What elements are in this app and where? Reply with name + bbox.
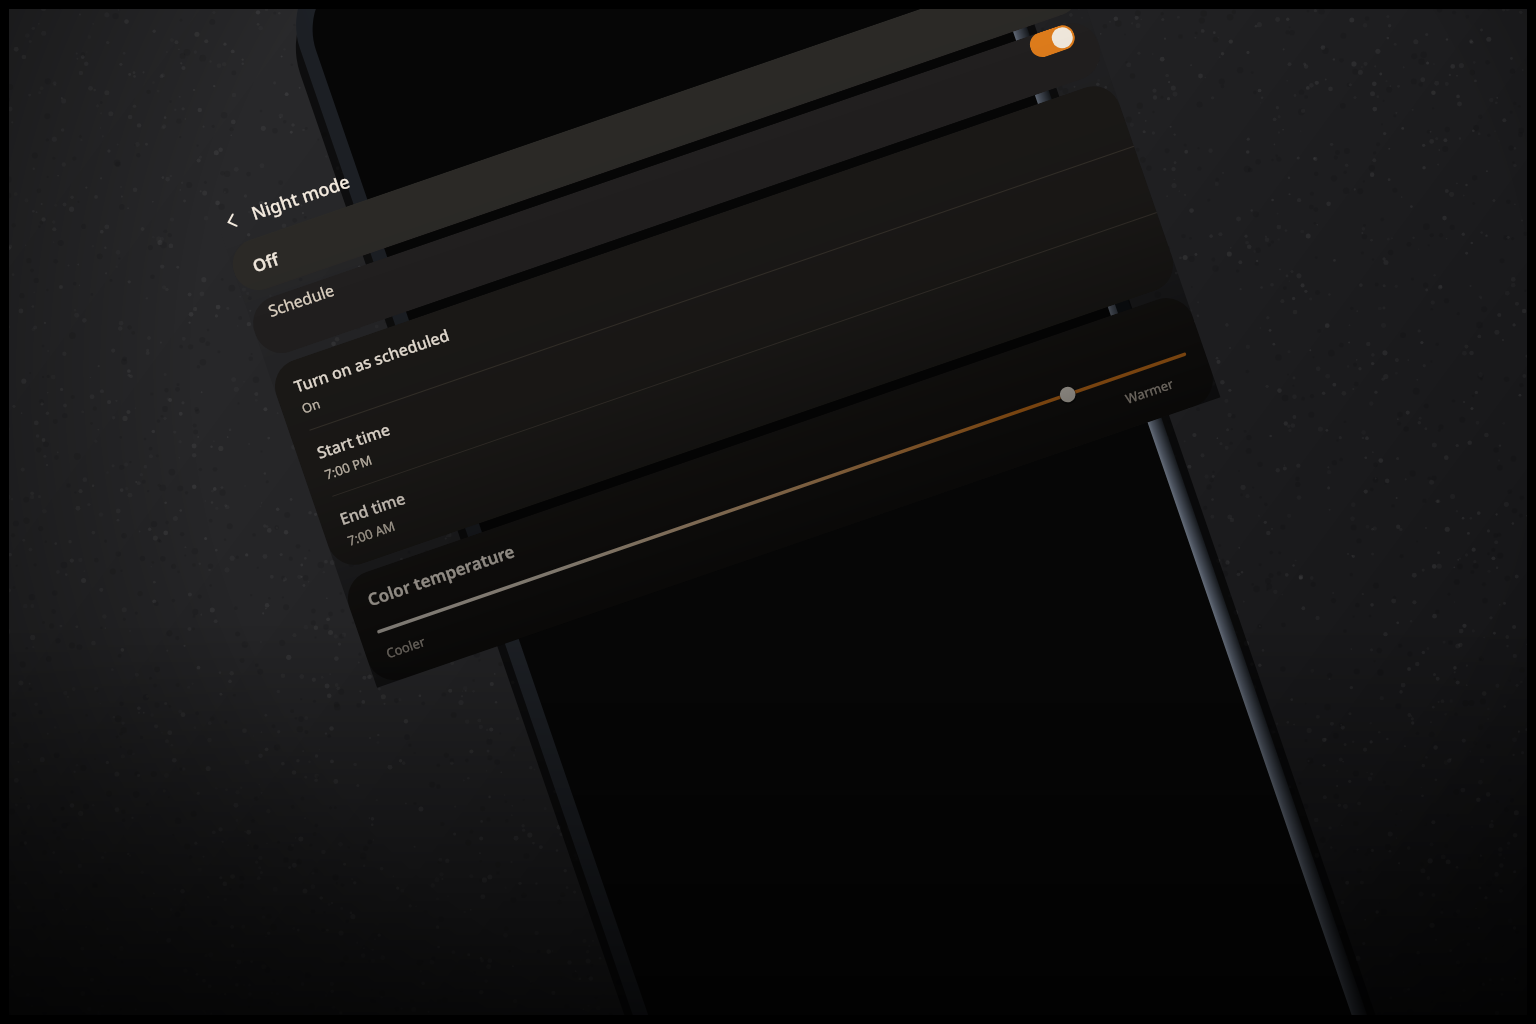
staticText: On (299, 394, 323, 417)
staticText: Color temperature (364, 539, 517, 611)
staticText: End time (337, 487, 408, 530)
staticText: Schedule (265, 279, 337, 322)
staticText: Warmer (1123, 374, 1176, 408)
button[interactable]: Turn on as scheduled (267, 79, 1134, 436)
button[interactable]: Back (213, 203, 249, 239)
staticText: 7:00 AM (345, 516, 398, 550)
staticText: Off (249, 247, 282, 277)
button[interactable]: End time (314, 213, 1181, 572)
button[interactable]: Schedule (245, 15, 1108, 360)
staticText: 7:00 PM (322, 451, 374, 484)
button[interactable]: Color temperature (340, 290, 1220, 688)
button[interactable]: Off (226, 0, 1086, 297)
staticText: Turn on as scheduled (291, 324, 452, 398)
staticText: Cooler (384, 632, 428, 662)
button[interactable]: Start time (291, 147, 1157, 502)
staticText: Start time (314, 418, 393, 464)
staticText: Night mode (248, 169, 353, 226)
